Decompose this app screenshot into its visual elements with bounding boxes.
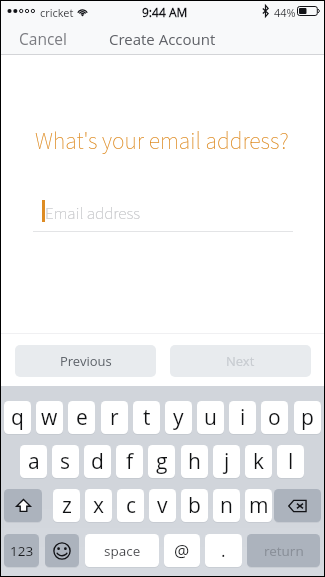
button[interactable]: e bbox=[68, 401, 95, 434]
button[interactable]: space bbox=[85, 534, 159, 567]
staticText: p bbox=[301, 403, 314, 432]
button[interactable]: o bbox=[261, 401, 288, 434]
staticText: Create Account bbox=[109, 29, 216, 49]
button[interactable]: 123 bbox=[4, 534, 39, 567]
staticText: j bbox=[224, 447, 230, 476]
button[interactable]: r bbox=[101, 401, 128, 434]
button[interactable]: . bbox=[205, 534, 242, 567]
button[interactable]: z bbox=[53, 489, 80, 522]
staticText: x bbox=[93, 491, 105, 520]
staticText: a bbox=[28, 447, 40, 476]
staticText: s bbox=[60, 447, 71, 476]
button[interactable]: k bbox=[245, 445, 272, 478]
button[interactable]: d bbox=[84, 445, 111, 478]
button[interactable]: Backspace bbox=[274, 489, 321, 522]
staticText: 9:44 AM bbox=[142, 4, 188, 20]
button[interactable]: l bbox=[277, 445, 304, 478]
button[interactable]: s bbox=[52, 445, 79, 478]
button[interactable]: Previous bbox=[15, 345, 156, 377]
button[interactable]: n bbox=[213, 489, 240, 522]
button[interactable]: i bbox=[229, 401, 256, 434]
button[interactable]: p bbox=[294, 401, 321, 434]
button[interactable]: x bbox=[85, 489, 112, 522]
staticText: 123 bbox=[10, 542, 34, 560]
staticText: z bbox=[62, 491, 72, 520]
staticText: n bbox=[220, 491, 233, 520]
staticText: What's your email address? bbox=[35, 125, 289, 158]
staticText: space bbox=[104, 542, 141, 560]
staticText: u bbox=[204, 403, 217, 432]
staticText: y bbox=[173, 403, 184, 432]
staticText: c bbox=[126, 491, 136, 520]
button[interactable]: t bbox=[133, 401, 160, 434]
staticText: i bbox=[240, 403, 246, 432]
staticText: t bbox=[143, 403, 151, 432]
staticText: Cancel bbox=[19, 28, 67, 49]
staticText: r bbox=[110, 403, 119, 432]
staticText: f bbox=[126, 447, 134, 476]
staticText: e bbox=[76, 403, 88, 432]
button[interactable]: a bbox=[20, 445, 47, 478]
button[interactable]: v bbox=[149, 489, 176, 522]
staticText: b bbox=[188, 491, 201, 520]
staticText: w bbox=[41, 403, 58, 432]
staticText: k bbox=[253, 447, 265, 476]
button[interactable]: j bbox=[213, 445, 240, 478]
button[interactable]: Shift bbox=[4, 489, 42, 522]
button[interactable]: Next bbox=[170, 345, 311, 377]
staticText: v bbox=[157, 491, 168, 520]
staticText: 44% bbox=[274, 5, 296, 20]
button[interactable]: q bbox=[4, 401, 31, 434]
staticText: return bbox=[264, 542, 304, 560]
button[interactable]: b bbox=[181, 489, 208, 522]
staticText: Previous bbox=[60, 352, 112, 370]
button[interactable]: g bbox=[148, 445, 175, 478]
button[interactable]: h bbox=[181, 445, 208, 478]
staticText: g bbox=[156, 447, 168, 476]
button[interactable]: y bbox=[165, 401, 192, 434]
staticText: @ bbox=[174, 539, 190, 562]
staticText: l bbox=[288, 447, 294, 476]
button[interactable]: w bbox=[36, 401, 63, 434]
staticText: cricket bbox=[40, 5, 74, 20]
staticText: . bbox=[221, 539, 226, 562]
staticText: Next bbox=[226, 352, 255, 370]
button[interactable]: Cancel bbox=[1, 22, 85, 55]
button[interactable]: m bbox=[245, 489, 272, 522]
button[interactable]: @ bbox=[164, 534, 200, 567]
staticText: o bbox=[268, 403, 281, 432]
staticText: q bbox=[11, 403, 24, 432]
button[interactable]: c bbox=[117, 489, 144, 522]
button[interactable]: Emoji bbox=[45, 534, 79, 567]
staticText: Email address bbox=[45, 202, 141, 226]
staticText: m bbox=[249, 491, 269, 520]
staticText: d bbox=[91, 447, 104, 476]
button[interactable]: return bbox=[247, 534, 320, 567]
staticText: h bbox=[188, 447, 201, 476]
button[interactable]: u bbox=[197, 401, 224, 434]
button[interactable]: f bbox=[116, 445, 143, 478]
